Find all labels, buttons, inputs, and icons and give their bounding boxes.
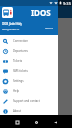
staticText: SMS tickets — [13, 69, 28, 73]
staticText: About — [13, 109, 21, 113]
button[interactable]: Back — [50, 117, 60, 127]
button[interactable]: Home — [31, 117, 41, 127]
button[interactable]: Help — [0, 86, 58, 96]
staticText: Settings — [13, 79, 24, 83]
button[interactable]: Settings — [0, 76, 58, 86]
staticText: 9:35 — [63, 1, 71, 6]
staticText: Tickets — [13, 59, 23, 63]
button[interactable]: Recents — [12, 117, 22, 127]
button[interactable]: Support and contact — [0, 96, 58, 106]
staticText: Help — [13, 89, 20, 93]
staticText: IDOS Jízdní řády — [2, 22, 22, 26]
button[interactable]: Connection — [0, 36, 58, 46]
staticText: idos.cz — [45, 26, 53, 29]
staticText: Departures — [13, 49, 28, 53]
staticText: Support and contact — [13, 99, 40, 103]
staticText: idos@chaps.cz — [2, 27, 20, 30]
button[interactable]: SMS tickets — [0, 66, 58, 76]
button[interactable]: Tickets — [0, 56, 58, 66]
button[interactable]: Departures — [0, 46, 58, 56]
staticText: IDOS — [31, 7, 51, 18]
button[interactable]: About — [0, 106, 58, 116]
staticText: Connection — [13, 39, 28, 43]
